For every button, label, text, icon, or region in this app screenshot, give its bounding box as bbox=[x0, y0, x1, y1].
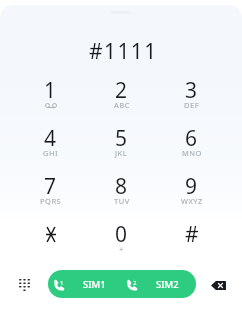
staticText: 2 bbox=[133, 279, 137, 287]
staticText: #1111 bbox=[89, 37, 158, 66]
staticText: DEF bbox=[184, 100, 200, 110]
button[interactable]: 8 bbox=[86, 162, 157, 210]
staticText: JKL bbox=[115, 148, 128, 158]
button[interactable]: #1111 bbox=[2, 36, 242, 66]
staticText: 3 bbox=[185, 76, 198, 105]
staticText: WXYZ bbox=[181, 196, 203, 206]
staticText: # bbox=[185, 220, 199, 249]
staticText: 4 bbox=[44, 124, 57, 153]
staticText: + bbox=[119, 244, 124, 254]
staticText: 6 bbox=[185, 124, 198, 153]
staticText: 2 bbox=[115, 76, 128, 105]
staticText: SIM1 bbox=[83, 278, 106, 291]
button[interactable]: 6 bbox=[156, 114, 227, 162]
staticText: SIM2 bbox=[156, 278, 179, 291]
staticText: 0 bbox=[115, 220, 128, 249]
button[interactable]: 1 bbox=[48, 270, 196, 298]
button[interactable]: 9 bbox=[156, 162, 227, 210]
button[interactable]: 5 bbox=[86, 114, 157, 162]
button[interactable]: 1 bbox=[15, 66, 86, 114]
staticText: 7 bbox=[44, 172, 57, 201]
staticText: TUV bbox=[114, 196, 130, 206]
button[interactable]: 0 bbox=[86, 210, 157, 258]
button[interactable]: # bbox=[156, 210, 227, 258]
staticText: MNO bbox=[182, 148, 202, 158]
staticText: 1 bbox=[60, 279, 64, 287]
staticText: ABC bbox=[114, 100, 130, 110]
button[interactable] bbox=[15, 210, 86, 258]
button[interactable]: 3 bbox=[156, 66, 227, 114]
staticText: 9 bbox=[185, 172, 198, 201]
staticText: GHI bbox=[43, 148, 59, 158]
staticText: 5 bbox=[115, 124, 128, 153]
button[interactable]: 7 bbox=[15, 162, 86, 210]
staticText: 8 bbox=[115, 172, 128, 201]
button[interactable]: 4 bbox=[15, 114, 86, 162]
staticText: 1 bbox=[44, 76, 57, 105]
button[interactable]: Backspace bbox=[203, 276, 234, 294]
button[interactable]: Keypad bbox=[10, 276, 38, 294]
button[interactable]: 2 bbox=[86, 66, 157, 114]
staticText: PQRS bbox=[40, 196, 62, 206]
